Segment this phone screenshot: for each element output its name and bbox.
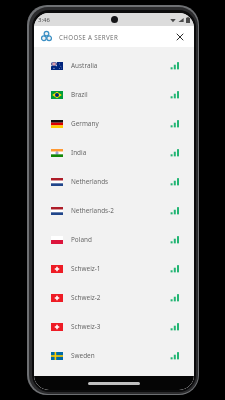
button[interactable]: Schweiz-1 [34, 254, 194, 283]
staticText: France [71, 376, 92, 385]
staticText: CHOOSE A SERVER [59, 33, 119, 41]
button[interactable]: App logo [41, 31, 52, 42]
staticText: Schweiz-2 [71, 293, 101, 302]
button[interactable]: Germany [34, 109, 194, 138]
staticText: Brazil [71, 90, 88, 99]
button[interactable]: Netherlands-2 [34, 196, 194, 225]
staticText: Germany [71, 119, 99, 128]
staticText: Poland [71, 235, 92, 244]
button[interactable]: Australia [34, 51, 194, 80]
staticText: India [71, 148, 87, 157]
button[interactable]: Brazil [34, 80, 194, 109]
staticText: Australia [71, 61, 98, 70]
button[interactable]: France [34, 370, 194, 390]
button[interactable]: Netherlands [34, 167, 194, 196]
staticText: Sweden [71, 351, 95, 360]
staticText: Netherlands [71, 177, 109, 186]
button[interactable]: Sweden [34, 341, 194, 370]
staticText: 3:46 [38, 16, 50, 24]
staticText: Schweiz-1 [71, 264, 101, 273]
button[interactable]: Schweiz-3 [34, 312, 194, 341]
staticText: Schweiz-3 [71, 322, 101, 331]
staticText: Netherlands-2 [71, 206, 114, 215]
button[interactable]: Close [173, 30, 187, 44]
button[interactable]: Schweiz-2 [34, 283, 194, 312]
button[interactable]: India [34, 138, 194, 167]
button[interactable]: Poland [34, 225, 194, 254]
